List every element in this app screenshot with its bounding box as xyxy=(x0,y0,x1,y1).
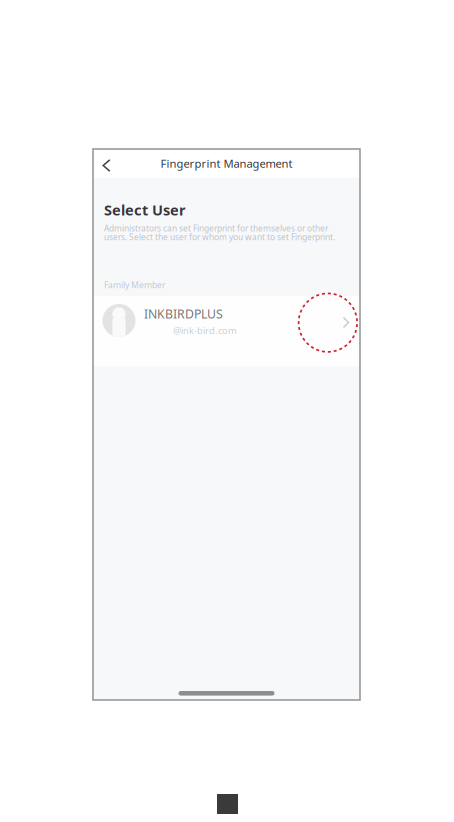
staticText: @ink-bird.com xyxy=(173,324,237,337)
staticText: Family Member xyxy=(104,279,166,291)
staticText: Fingerprint Management xyxy=(160,156,292,171)
button[interactable]: INKBIRDPLUS xyxy=(93,296,360,366)
staticText: INKBIRDPLUS xyxy=(144,305,223,322)
staticText: Select User xyxy=(104,200,185,220)
staticText: Administrators can set Fingerprint for t… xyxy=(104,222,328,234)
staticText: users. Select the user for whom you want… xyxy=(104,231,335,243)
button[interactable]: Back xyxy=(94,151,119,180)
